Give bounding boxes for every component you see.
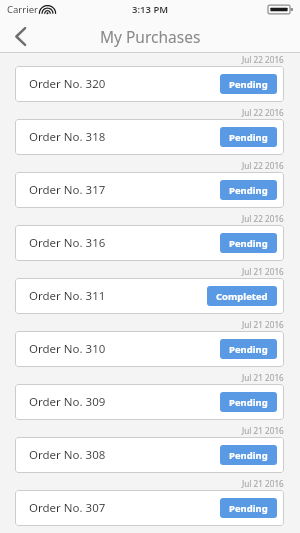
button[interactable]: Completed — [207, 286, 277, 306]
staticText: Order No. 308 — [29, 447, 106, 463]
staticText: Jul 22 2016 — [242, 107, 284, 118]
staticText: My Purchases — [100, 26, 201, 47]
staticText: Order No. 320 — [29, 76, 106, 92]
button[interactable]: Order No. 316 — [15, 225, 284, 261]
button[interactable]: Order No. 317 — [15, 172, 284, 208]
staticText: Jul 21 2016 — [242, 372, 284, 383]
button[interactable]: Pending — [220, 127, 277, 147]
staticText: Pending — [229, 78, 268, 91]
button[interactable]: Back — [0, 19, 40, 53]
button[interactable]: Order No. 320 — [15, 66, 284, 102]
button[interactable]: Order No. 309 — [15, 384, 284, 420]
staticText: Pending — [229, 131, 268, 144]
button[interactable]: Order No. 307 — [15, 490, 284, 526]
staticText: Pending — [229, 343, 268, 356]
button[interactable]: Pending — [220, 233, 277, 253]
button[interactable]: Order No. 318 — [15, 119, 284, 155]
button[interactable]: Pending — [220, 498, 277, 518]
button[interactable]: Pending — [220, 180, 277, 200]
staticText: Jul 21 2016 — [242, 425, 284, 436]
staticText: Jul 22 2016 — [242, 54, 284, 65]
staticText: Order No. 318 — [29, 129, 106, 145]
staticText: Order No. 309 — [29, 394, 106, 410]
staticText: Pending — [229, 237, 268, 250]
staticText: Order No. 317 — [29, 182, 106, 198]
staticText: Order No. 307 — [29, 500, 106, 516]
staticText: Pending — [229, 396, 268, 409]
button[interactable]: Order No. 308 — [15, 437, 284, 473]
button[interactable]: Order No. 311 — [15, 278, 284, 314]
staticText: Pending — [229, 449, 268, 462]
staticText: Jul 21 2016 — [242, 266, 284, 277]
button[interactable]: Pending — [220, 392, 277, 412]
staticText: Completed — [216, 290, 268, 303]
staticText: Carrier — [7, 3, 38, 16]
staticText: Pending — [229, 184, 268, 197]
staticText: 3:13 PM — [132, 3, 169, 16]
staticText: Order No. 316 — [29, 235, 106, 251]
staticText: Jul 21 2016 — [242, 478, 284, 489]
staticText: Pending — [229, 502, 268, 515]
staticText: Order No. 310 — [29, 341, 106, 357]
staticText: Order No. 311 — [29, 288, 106, 304]
staticText: Jul 22 2016 — [242, 160, 284, 171]
staticText: Jul 21 2016 — [242, 319, 284, 330]
button[interactable]: Pending — [220, 74, 277, 94]
button[interactable]: Pending — [220, 339, 277, 359]
button[interactable]: Pending — [220, 445, 277, 465]
button[interactable]: Order No. 310 — [15, 331, 284, 367]
staticText: Jul 22 2016 — [242, 213, 284, 224]
